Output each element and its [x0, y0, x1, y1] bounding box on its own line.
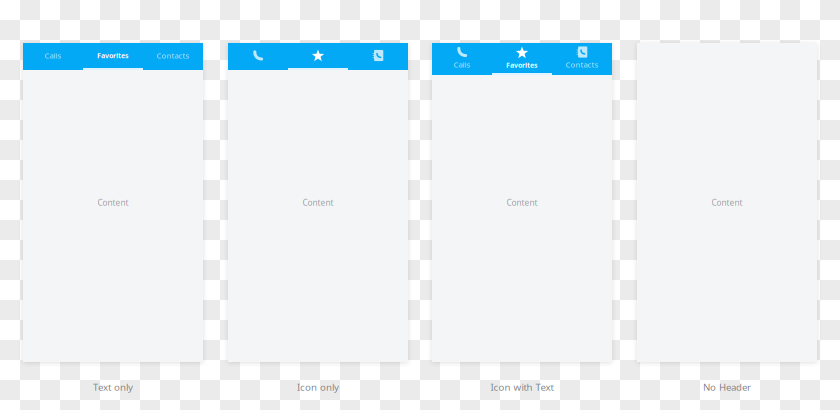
staticText: Calls [453, 59, 470, 70]
button[interactable]: Favorites [288, 43, 348, 68]
staticText: Contacts [565, 59, 598, 70]
button[interactable]: Favorites [492, 43, 552, 73]
staticText: Content [302, 197, 333, 208]
button[interactable]: Favorites [83, 43, 143, 68]
staticText: Text only [93, 380, 133, 394]
staticText: Calls [44, 50, 61, 61]
staticText: Favorites [506, 60, 538, 70]
staticText: Content [97, 197, 128, 208]
button[interactable]: Contacts [552, 43, 612, 73]
button[interactable]: Calls [23, 43, 83, 68]
staticText: Content [506, 197, 537, 208]
staticText: No Header [703, 380, 751, 394]
staticText: Icon only [297, 380, 339, 394]
staticText: Content [711, 197, 742, 208]
staticText: Icon with Text [490, 380, 553, 394]
staticText: Favorites [97, 51, 129, 60]
button[interactable]: Calls [432, 43, 492, 73]
button[interactable]: Contacts [143, 43, 203, 68]
button[interactable]: Calls [228, 43, 288, 68]
button[interactable]: Contacts [348, 43, 408, 68]
staticText: Contacts [156, 50, 189, 61]
